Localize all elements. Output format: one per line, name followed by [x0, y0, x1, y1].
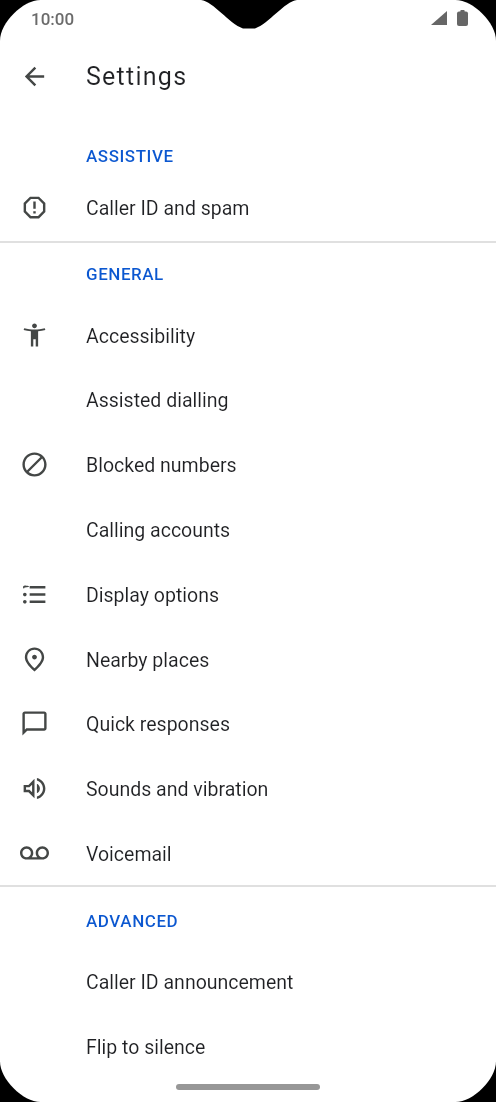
staticText: Caller ID announcement: [86, 971, 294, 994]
button[interactable]: Blocked numbers: [0, 433, 496, 498]
button[interactable]: Flip to silence: [0, 1015, 496, 1080]
staticText: ASSISTIVE: [86, 146, 174, 166]
button[interactable]: Nearby places: [0, 628, 496, 693]
button[interactable]: Assisted dialling: [0, 368, 496, 433]
staticText: Nearby places: [86, 649, 210, 672]
button[interactable]: Caller ID announcement: [0, 950, 496, 1015]
button[interactable]: Navigate up: [10, 52, 58, 100]
staticText: Sounds and vibration: [86, 778, 269, 801]
button[interactable]: Quick responses: [0, 692, 496, 757]
staticText: Blocked numbers: [86, 454, 237, 477]
staticText: Caller ID and spam: [86, 197, 250, 220]
button[interactable]: Sounds and vibration: [0, 757, 496, 822]
staticText: Voicemail: [86, 843, 172, 866]
staticText: Accessibility: [86, 325, 196, 348]
staticText: Settings: [86, 62, 188, 91]
staticText: Assisted dialling: [86, 389, 229, 412]
button[interactable]: Accessibility: [0, 304, 496, 369]
button[interactable]: Calling accounts: [0, 498, 496, 563]
button[interactable]: Voicemail: [0, 822, 496, 887]
button[interactable]: Display options: [0, 563, 496, 628]
staticText: Display options: [86, 584, 219, 607]
staticText: ADVANCED: [86, 911, 179, 931]
button[interactable]: Caller ID and spam: [0, 176, 496, 241]
staticText: 10:00: [31, 9, 75, 29]
staticText: Calling accounts: [86, 519, 231, 542]
staticText: Quick responses: [86, 713, 230, 736]
staticText: GENERAL: [86, 264, 164, 284]
staticText: Flip to silence: [86, 1036, 206, 1059]
